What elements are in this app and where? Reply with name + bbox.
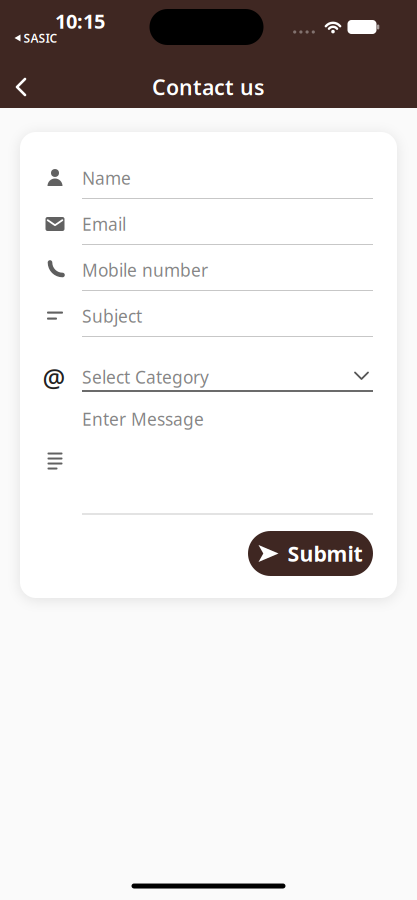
staticText: Enter Message (82, 407, 204, 430)
staticText: 10:15 (55, 8, 105, 34)
button[interactable]: @ (42, 358, 373, 398)
button[interactable]: Mobile number (42, 247, 373, 293)
staticText: Submit (287, 539, 362, 568)
button[interactable]: Back (0, 66, 44, 108)
button[interactable]: Submit (248, 531, 373, 576)
staticText: Subject (82, 304, 142, 327)
button[interactable]: Name (42, 155, 373, 201)
staticText: @ (42, 361, 65, 394)
button[interactable]: Subject (42, 293, 373, 339)
staticText: Mobile number (82, 258, 208, 281)
staticText: Email (82, 212, 126, 235)
staticText: Contact us (152, 73, 265, 101)
button[interactable]: Enter Message (45, 408, 373, 520)
staticText: Name (82, 166, 131, 189)
staticText: Select Category (82, 365, 209, 388)
staticText: SASIC (23, 30, 57, 46)
button[interactable]: Email (42, 201, 373, 247)
